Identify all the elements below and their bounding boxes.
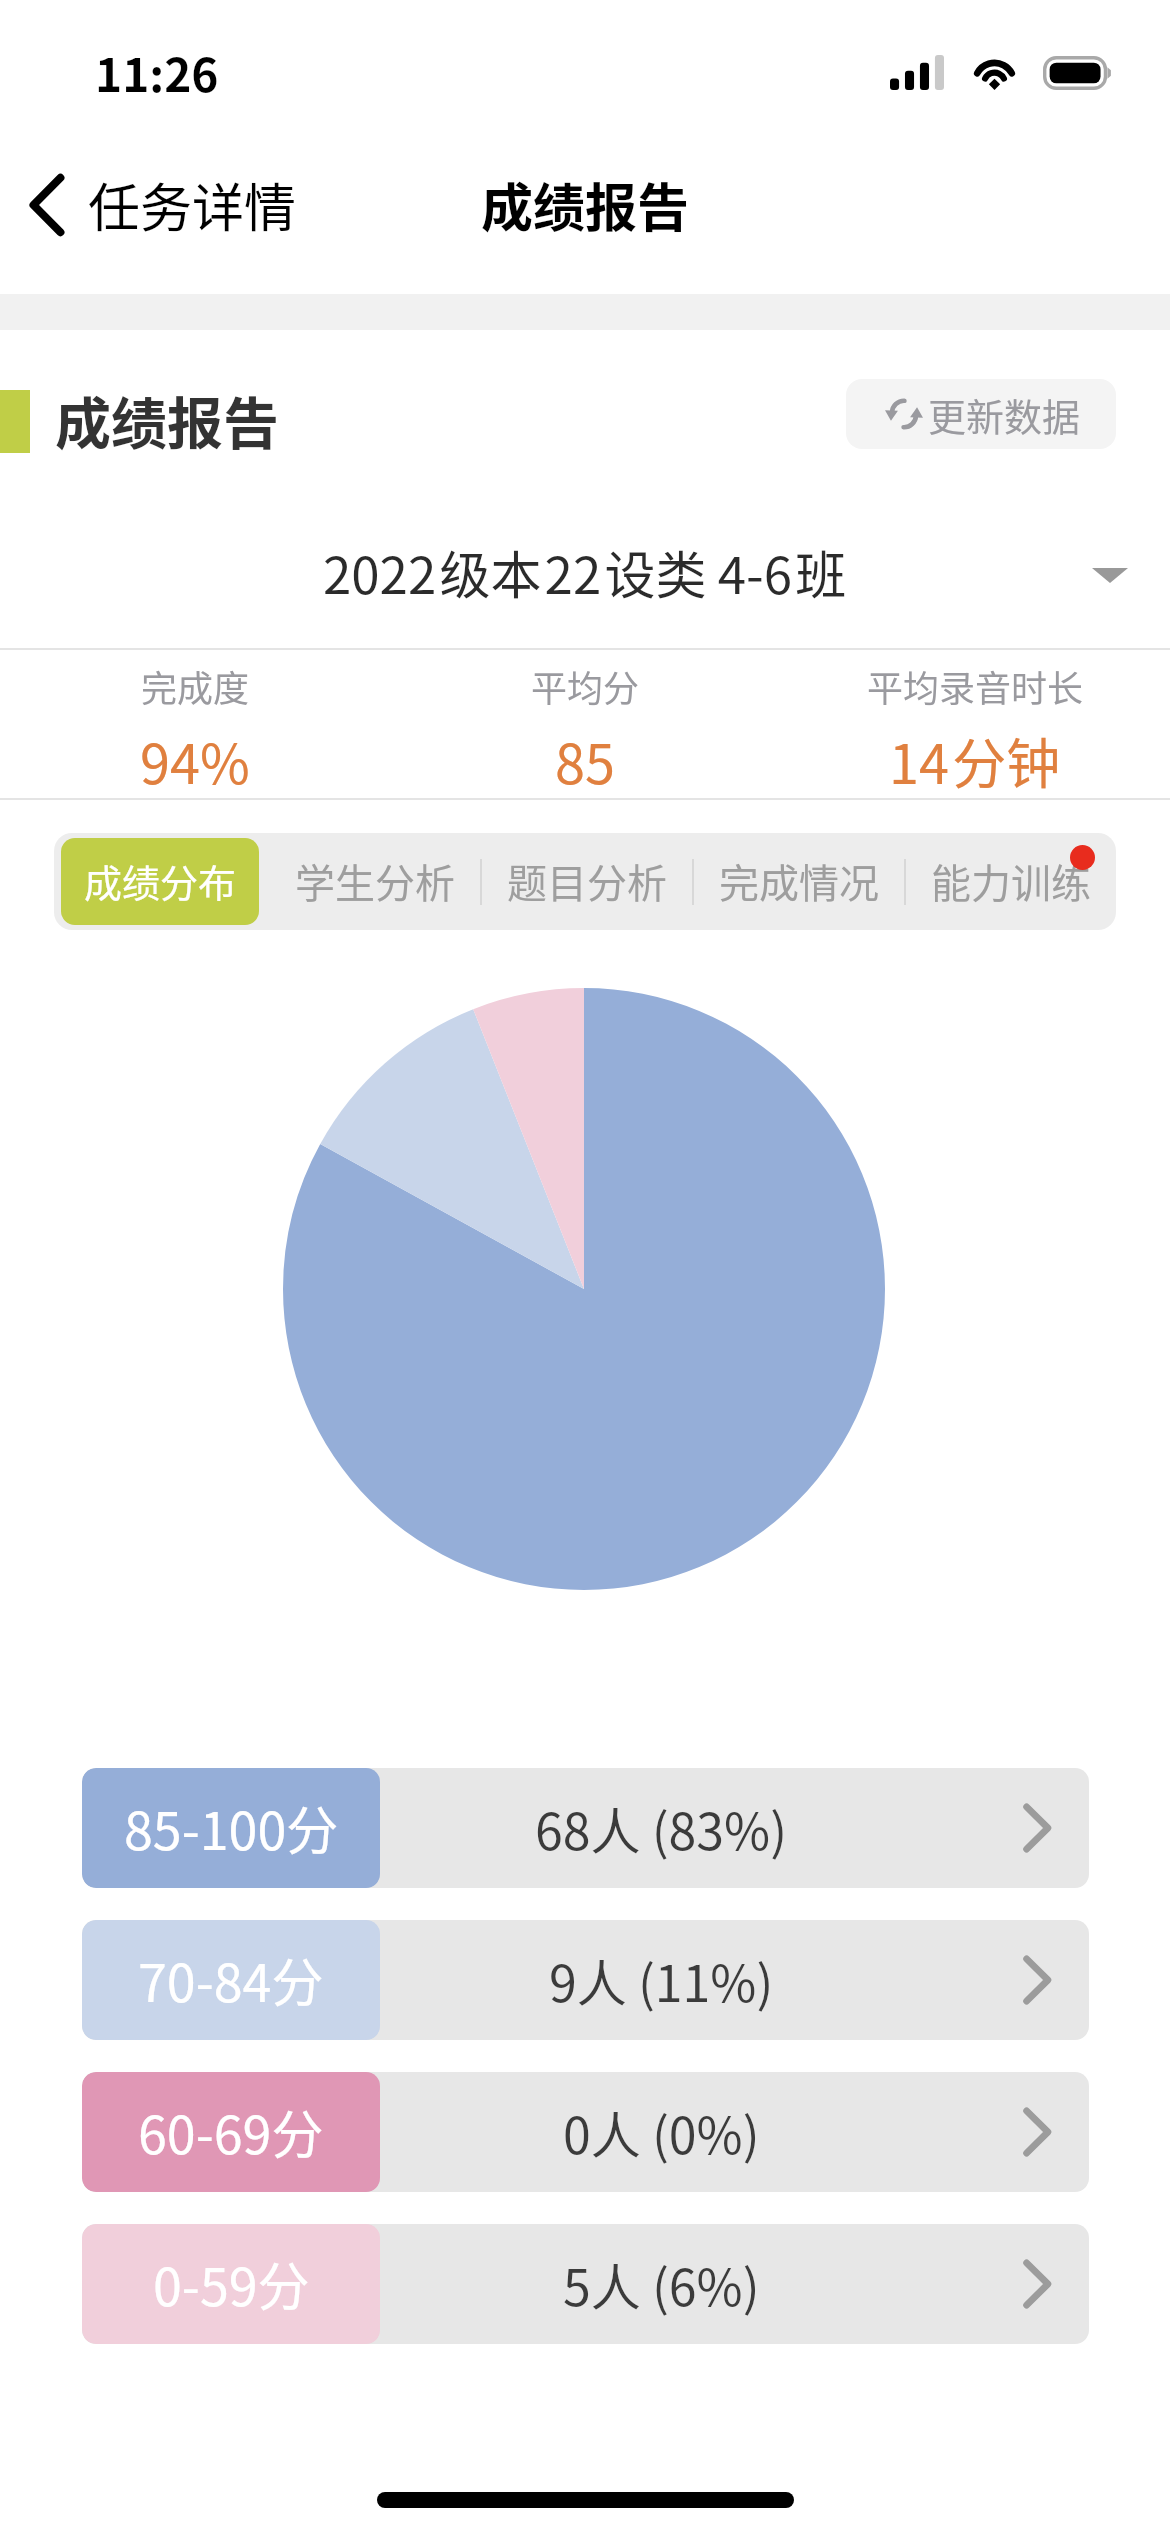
button[interactable]: 完成度 bbox=[0, 650, 390, 798]
staticText: 成绩报告 bbox=[481, 167, 690, 242]
other: Back bbox=[27, 174, 65, 236]
button[interactable]: 平均分 bbox=[390, 650, 780, 798]
staticText: 11:26 bbox=[95, 39, 219, 106]
button[interactable]: 成绩分布 bbox=[61, 838, 259, 925]
staticText: 平均分 bbox=[531, 660, 640, 712]
staticText: 题目分析 bbox=[507, 852, 667, 910]
button[interactable]: 70-84分 bbox=[82, 1920, 1089, 2040]
button[interactable]: 完成情况 bbox=[694, 833, 904, 930]
staticText: 5人 (6%) bbox=[563, 2248, 760, 2320]
button[interactable]: 0-59分 bbox=[82, 2224, 1089, 2344]
staticText: 68人 (83%) bbox=[535, 1792, 788, 1864]
staticText: 学生分析 bbox=[295, 852, 455, 910]
staticText: 成绩报告 bbox=[55, 379, 279, 460]
staticText: 85-100分 bbox=[124, 1790, 339, 1865]
button[interactable]: 题目分析 bbox=[482, 833, 692, 930]
staticText: 14 分钟 bbox=[889, 721, 1061, 799]
button[interactable]: 平均录音时长 bbox=[780, 650, 1170, 798]
staticText: 任务详情 bbox=[88, 167, 297, 242]
staticText: 成绩分布 bbox=[84, 853, 237, 908]
staticText: 60-69分 bbox=[138, 2094, 324, 2169]
other: Open 60-69分 details bbox=[1024, 2109, 1050, 2155]
button[interactable]: 学生分析 bbox=[269, 833, 480, 930]
staticText: 85 bbox=[555, 721, 615, 799]
staticText: 9人 (11%) bbox=[549, 1944, 774, 2016]
other: Open 0-59分 details bbox=[1024, 2261, 1050, 2307]
other: Open 85-100分 details bbox=[1024, 1805, 1050, 1851]
button[interactable]: 更新数据 bbox=[846, 379, 1116, 449]
staticText: 0-59分 bbox=[153, 2246, 310, 2321]
other: Open 70-84分 details bbox=[1024, 1957, 1050, 2003]
button[interactable]: 85-100分 bbox=[82, 1768, 1089, 1888]
staticText: 0人 (0%) bbox=[563, 2096, 760, 2168]
other: Select class bbox=[1092, 568, 1128, 583]
staticText: 2022 级本 22 设类 4-6 班 bbox=[323, 535, 847, 609]
staticText: 平均录音时长 bbox=[867, 660, 1084, 712]
button[interactable]: Back bbox=[0, 153, 321, 256]
button[interactable]: 60-69分 bbox=[82, 2072, 1089, 2192]
staticText: 完成度 bbox=[141, 660, 250, 712]
button[interactable]: 2022 级本 22 设类 4-6 班 bbox=[0, 513, 1170, 648]
staticText: 更新数据 bbox=[928, 387, 1081, 442]
staticText: 94% bbox=[140, 721, 250, 799]
button[interactable]: 能力训练 bbox=[906, 833, 1116, 930]
staticText: 完成情况 bbox=[719, 852, 879, 910]
staticText: 能力训练 bbox=[931, 852, 1091, 910]
staticText: 70-84分 bbox=[138, 1942, 324, 2017]
